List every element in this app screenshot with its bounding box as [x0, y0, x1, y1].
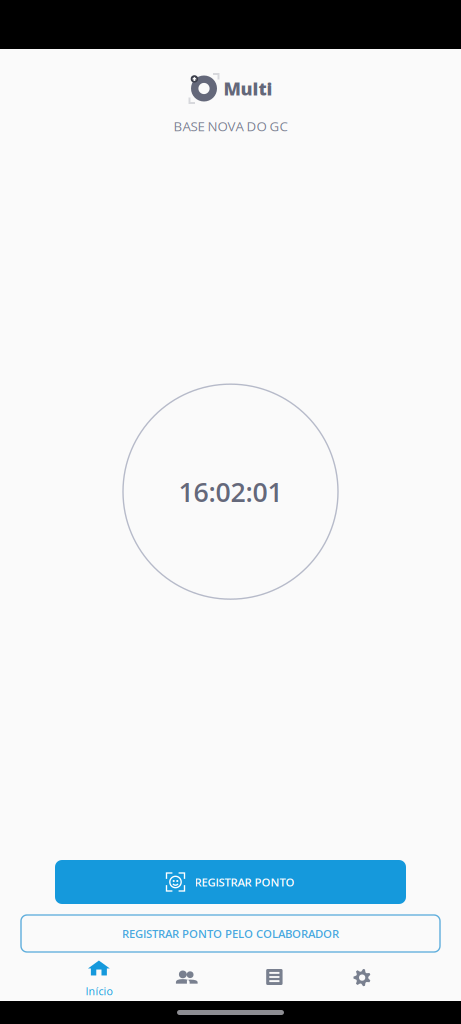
button[interactable]: Registros [230, 959, 318, 999]
button[interactable]: Início [55, 959, 143, 999]
staticText: REGISTRAR PONTO PELO COLABORADOR [122, 926, 339, 941]
staticText: BASE NOVA DO GC [173, 117, 287, 135]
staticText: Início [85, 984, 112, 998]
button[interactable]: Colaboradores [143, 959, 231, 999]
button[interactable]: Configurações [318, 959, 406, 999]
button[interactable]: REGISTRAR PONTO [55, 860, 406, 904]
staticText: REGISTRAR PONTO [194, 874, 294, 890]
staticText: 16:02:01 [178, 473, 282, 510]
button[interactable]: REGISTRAR PONTO PELO COLABORADOR [21, 915, 440, 952]
staticText: Multi [223, 76, 272, 101]
